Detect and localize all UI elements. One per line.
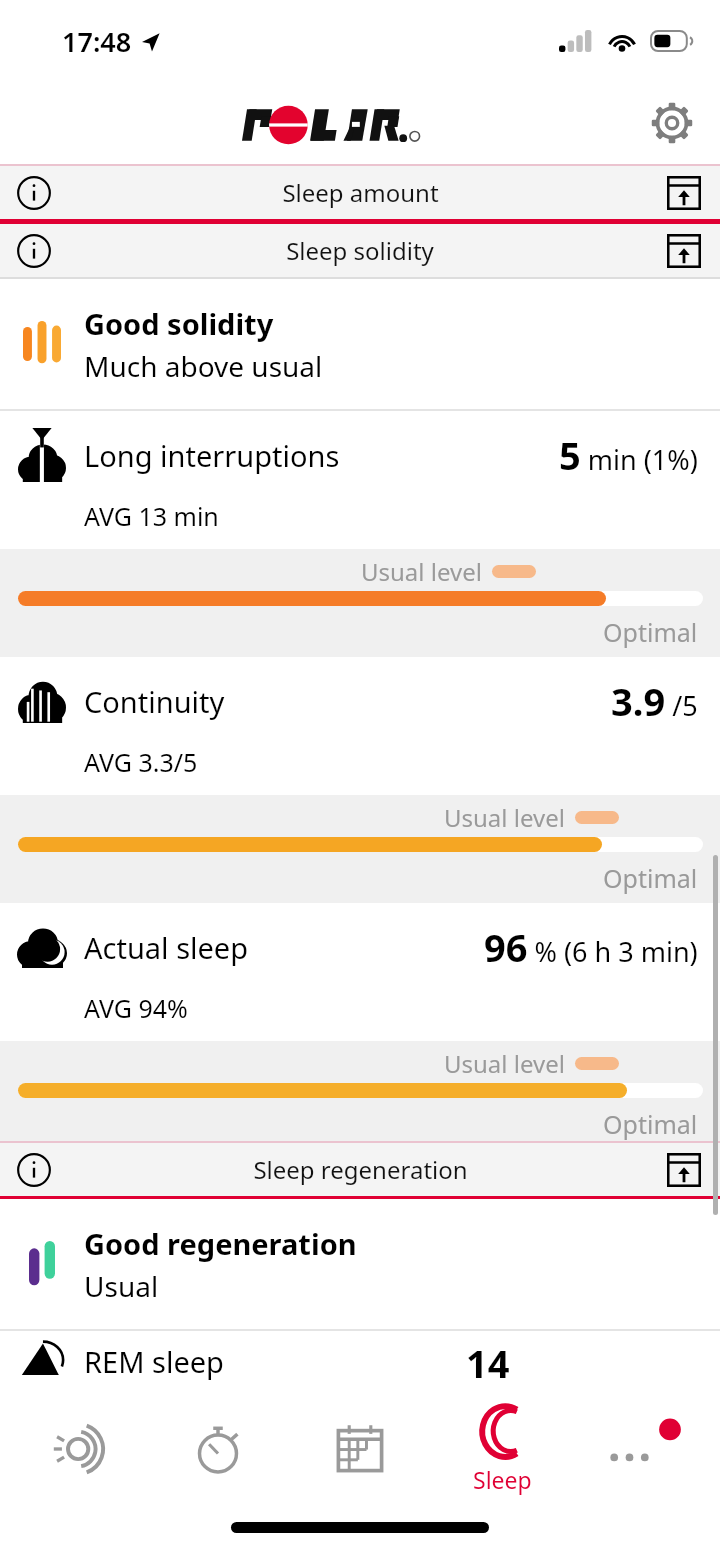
staticText: Optimal: [603, 861, 698, 895]
staticText: Usual level: [361, 555, 482, 588]
button[interactable]: Collapse section: [662, 1148, 706, 1192]
button[interactable]: Info: [0, 224, 720, 277]
staticText: Long interruptions: [84, 436, 340, 475]
button[interactable]: Continuity: [0, 657, 720, 903]
button[interactable]: Settings: [644, 95, 700, 151]
staticText: AVG 3.3/5: [84, 745, 198, 779]
staticText: Continuity: [84, 682, 225, 721]
button[interactable]: Good solidity: [0, 279, 720, 409]
staticText: Sleep solidity: [286, 234, 434, 267]
button[interactable]: Activity: [12, 1390, 142, 1508]
staticText: AVG 94%: [84, 991, 188, 1025]
staticText: REM sleep: [84, 1342, 224, 1381]
staticText: Optimal: [603, 1107, 698, 1141]
button[interactable]: Collapse section: [662, 229, 706, 273]
staticText: Much above usual: [84, 347, 323, 385]
staticText: Actual sleep: [84, 928, 249, 967]
staticText: 96 % (6 h 3 min): [484, 921, 698, 973]
button[interactable]: Collapse section: [662, 171, 706, 215]
button[interactable]: Info: [0, 166, 720, 219]
staticText: AVG 13 min: [84, 499, 219, 533]
button[interactable]: Sleep: [437, 1390, 567, 1508]
staticText: Good solidity: [84, 304, 274, 343]
staticText: 17:48: [62, 23, 132, 60]
button[interactable]: Actual sleep: [0, 903, 720, 1141]
staticText: Usual level: [444, 801, 565, 834]
staticText: Optimal: [603, 615, 698, 649]
button[interactable]: Info: [12, 229, 56, 273]
button[interactable]: Info: [12, 171, 56, 215]
button[interactable]: More: [578, 1390, 708, 1508]
staticText: Sleep amount: [282, 176, 439, 209]
staticText: 3.9 /5: [611, 675, 698, 727]
button[interactable]: Training: [153, 1390, 283, 1508]
staticText: Good regeneration: [84, 1224, 357, 1263]
button[interactable]: Diary: [295, 1390, 425, 1508]
button[interactable]: REM sleep: [0, 1331, 720, 1391]
button[interactable]: [242, 102, 478, 148]
staticText: Sleep: [473, 1464, 532, 1495]
staticText: Sleep regeneration: [253, 1153, 468, 1186]
button[interactable]: Long interruptions: [0, 411, 720, 657]
button[interactable]: Good regeneration: [0, 1199, 720, 1329]
staticText: 14: [466, 1337, 510, 1389]
button[interactable]: Info: [12, 1148, 56, 1192]
button[interactable]: Info: [0, 1143, 720, 1196]
staticText: 5 min (1%): [559, 429, 698, 481]
staticText: Usual: [84, 1267, 159, 1305]
staticText: Usual level: [444, 1047, 565, 1080]
